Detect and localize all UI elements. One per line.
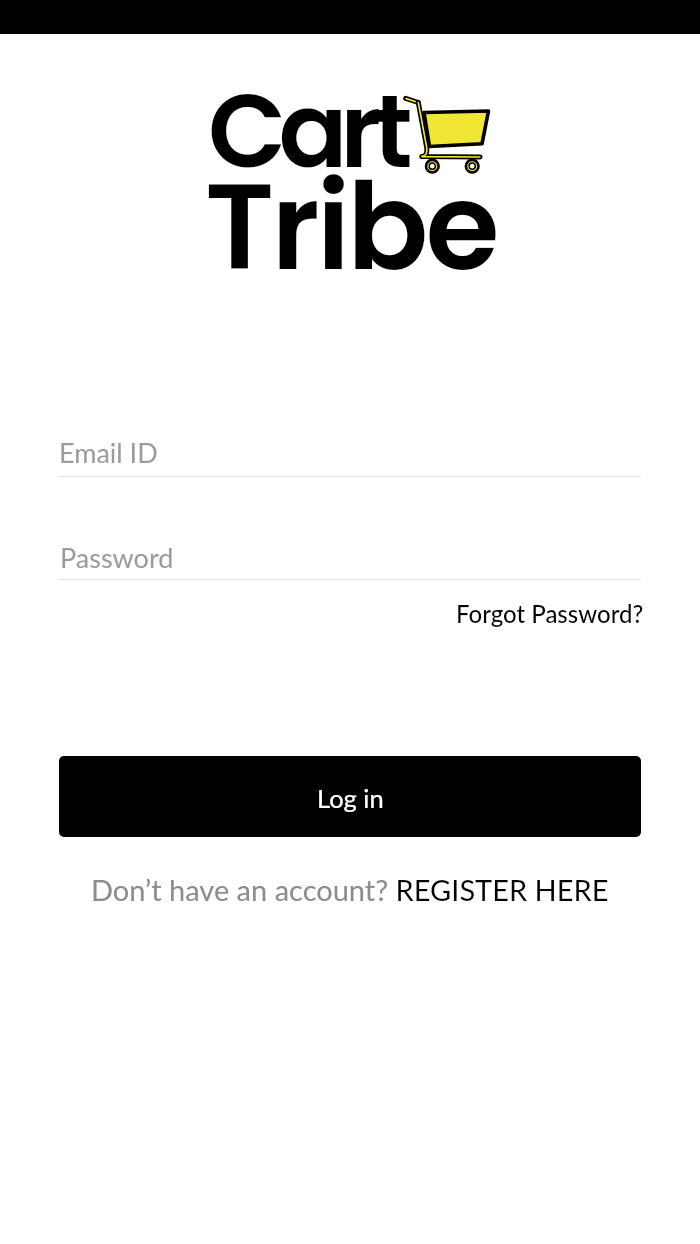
button[interactable]: Log in — [59, 756, 641, 837]
staticText: Log in — [317, 783, 384, 814]
button[interactable]: Forgot Password? — [456, 599, 644, 628]
staticText: Tribe — [205, 143, 497, 311]
button[interactable]: Don’t have an account? REGISTER HERE — [91, 872, 609, 907]
button[interactable]: Email ID — [59, 431, 641, 477]
staticText: Email ID — [59, 436, 158, 468]
staticText: Cart — [208, 60, 406, 203]
staticText: Password — [60, 541, 174, 573]
button[interactable]: Password — [59, 534, 641, 580]
